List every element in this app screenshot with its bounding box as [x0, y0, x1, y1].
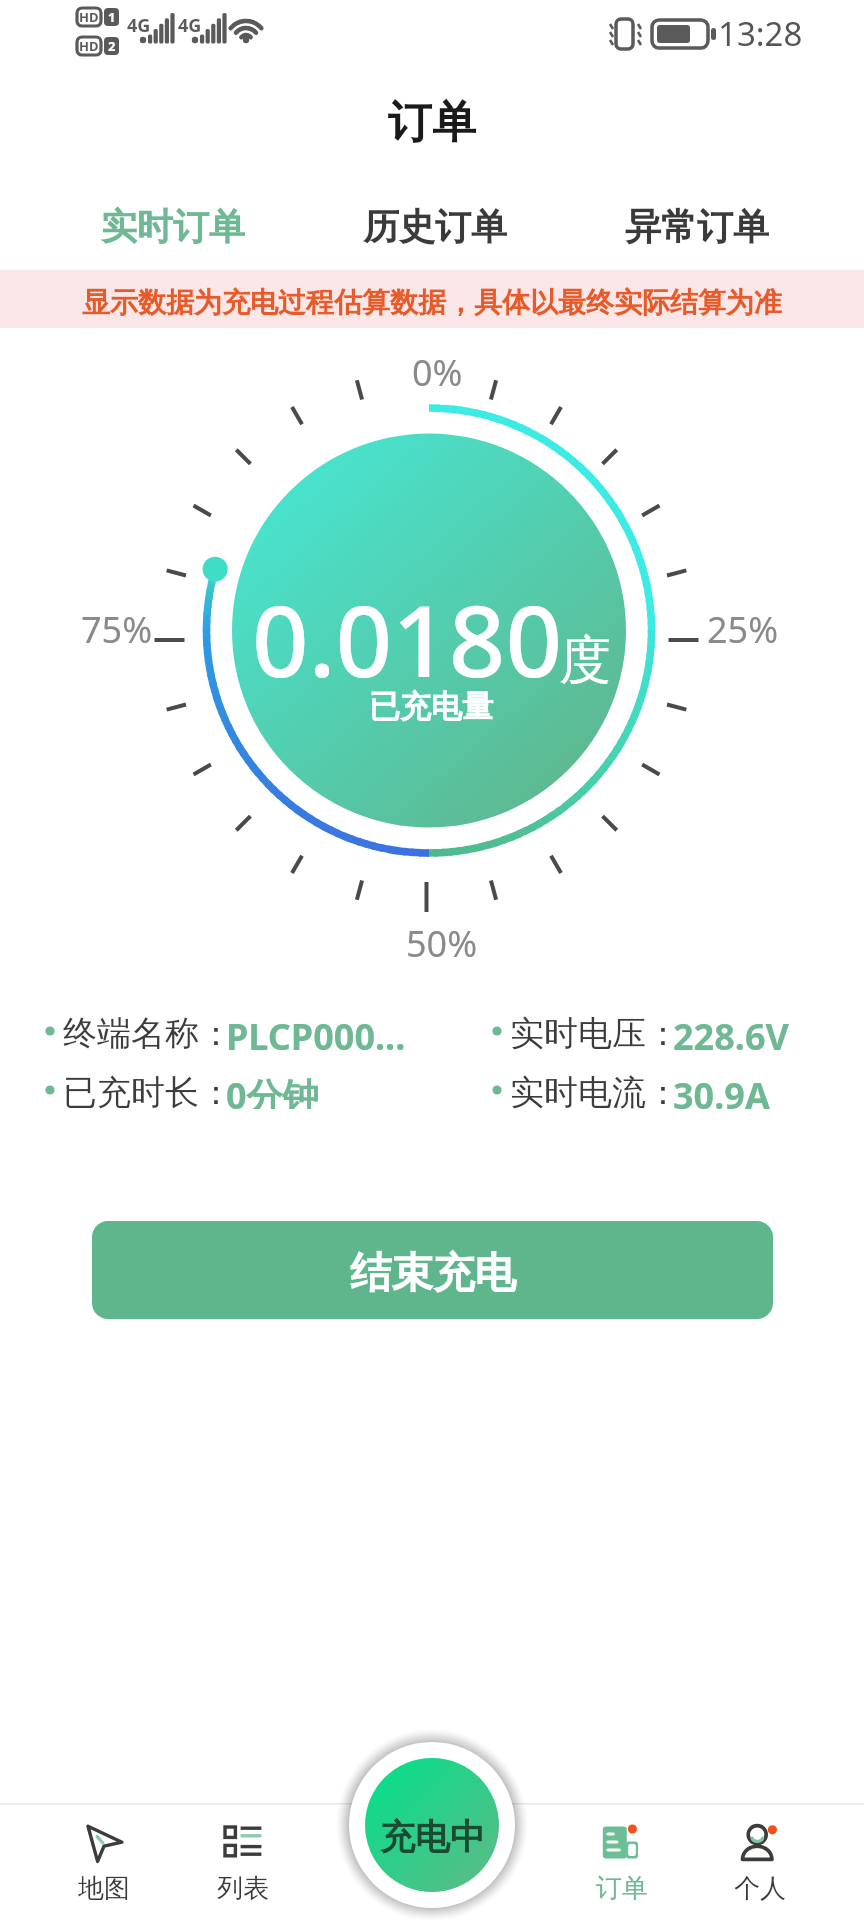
- staticText: 终端名称：: [63, 1012, 233, 1050]
- staticText: 0%: [412, 348, 463, 397]
- staticText: 充电中: [380, 1815, 485, 1859]
- staticText: 4G: [178, 13, 202, 38]
- staticText: 显示数据为充电过程估算数据，具体以最终实际结算为准: [82, 285, 782, 320]
- staticText: 4G: [127, 13, 151, 38]
- staticText: 25%: [707, 605, 779, 654]
- button[interactable]: 历史订单: [304, 184, 566, 268]
- staticText: 228.6V: [673, 1012, 789, 1050]
- button[interactable]: 结束充电: [92, 1221, 773, 1319]
- staticText: HD: [79, 37, 99, 55]
- staticText: 异常订单: [625, 204, 769, 249]
- staticText: 已充电量: [369, 687, 493, 726]
- staticText: 实时订单: [101, 204, 245, 249]
- staticText: 已充时长：: [63, 1071, 233, 1109]
- button[interactable]: 订单: [553, 1810, 691, 1910]
- staticText: 列表: [217, 1872, 269, 1905]
- staticText: 2: [108, 37, 116, 55]
- staticText: 订单: [388, 95, 476, 150]
- staticText: 实时电压：: [510, 1012, 680, 1050]
- staticText: 结束充电: [350, 1247, 516, 1299]
- button[interactable]: 实时订单: [42, 184, 304, 268]
- staticText: 个人: [734, 1872, 786, 1905]
- staticText: 50%: [406, 919, 478, 968]
- staticText: 30.9A: [673, 1071, 770, 1109]
- button[interactable]: 充电中: [365, 1758, 499, 1892]
- button[interactable]: 地图: [35, 1810, 173, 1910]
- staticText: 75%: [81, 605, 153, 654]
- staticText: 1: [108, 8, 116, 26]
- staticText: 13:28: [718, 11, 803, 56]
- button[interactable]: 异常订单: [566, 184, 828, 268]
- staticText: 0.0180: [252, 571, 563, 706]
- staticText: 订单: [596, 1872, 648, 1905]
- staticText: 度: [559, 628, 611, 694]
- staticText: 0分钟: [226, 1071, 319, 1109]
- staticText: 地图: [78, 1872, 130, 1905]
- staticText: 实时电流：: [510, 1071, 680, 1109]
- button[interactable]: 列表: [174, 1810, 312, 1910]
- staticText: HD: [79, 8, 99, 26]
- staticText: 历史订单: [363, 204, 507, 249]
- button[interactable]: 个人: [691, 1810, 829, 1910]
- staticText: PLCP000...: [226, 1012, 406, 1050]
